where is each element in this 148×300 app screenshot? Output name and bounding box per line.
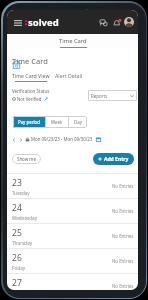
button[interactable]: Pick date range [95, 136, 101, 142]
staticText: Tuesday [12, 190, 30, 196]
staticText: 27 [12, 277, 22, 289]
staticText: No Entries [112, 233, 134, 239]
staticText: No Entries [112, 208, 134, 214]
button[interactable]: 24 [7, 199, 138, 223]
staticText: Wednesday [12, 215, 37, 221]
staticText: solved [28, 16, 59, 29]
staticText: Alert Detail [55, 72, 83, 79]
staticText: Time Card [59, 37, 87, 45]
button[interactable]: Week [46, 116, 68, 128]
staticText: Day [74, 119, 82, 125]
button[interactable]: 26 [7, 249, 138, 273]
button[interactable]: Day [69, 116, 87, 128]
staticText: Reports [91, 93, 108, 99]
staticText: Verification Status [12, 88, 50, 94]
staticText: No Entries [112, 283, 134, 289]
staticText: Not Verified [17, 96, 42, 102]
button[interactable]: Messages [98, 17, 109, 28]
button[interactable]: Add Entry [93, 153, 134, 165]
staticText: Thursday [12, 240, 33, 246]
button[interactable]: Show me [12, 154, 41, 164]
staticText: Time Card [12, 56, 48, 66]
staticText: No Entries [112, 258, 134, 264]
button[interactable]: Pay period [13, 116, 45, 128]
button[interactable]: 25 [7, 224, 138, 248]
button[interactable]: Time Card [59, 37, 87, 48]
button[interactable]: Reports [88, 90, 137, 101]
staticText: Add Entry [104, 156, 129, 163]
button[interactable]: Time Card View [12, 72, 50, 79]
staticText: No Entries [112, 183, 134, 189]
button[interactable]: Notifications [111, 17, 122, 28]
staticText: Show me [17, 156, 36, 162]
button[interactable]: Alert Detail [55, 72, 83, 79]
staticText: Mon 09/23/23 - Mon 09/30/23 [31, 136, 93, 142]
button[interactable]: Home [11, 59, 22, 70]
staticText: Friday [12, 265, 26, 271]
staticText: 26 [12, 252, 22, 264]
button[interactable]: Previous period [10, 136, 17, 143]
staticText: Week [51, 119, 63, 125]
staticText: Time Card View [12, 72, 50, 79]
staticText: Pay period [18, 119, 40, 125]
staticText: 25 [12, 227, 22, 239]
button[interactable]: Profile [124, 17, 134, 27]
button[interactable]: Menu [12, 17, 23, 28]
button[interactable]: 23 [7, 174, 138, 198]
button[interactable]: Next period [17, 136, 24, 143]
button[interactable]: 27 [7, 274, 138, 290]
staticText: 23 [12, 177, 22, 189]
staticText: 24 [12, 202, 22, 214]
